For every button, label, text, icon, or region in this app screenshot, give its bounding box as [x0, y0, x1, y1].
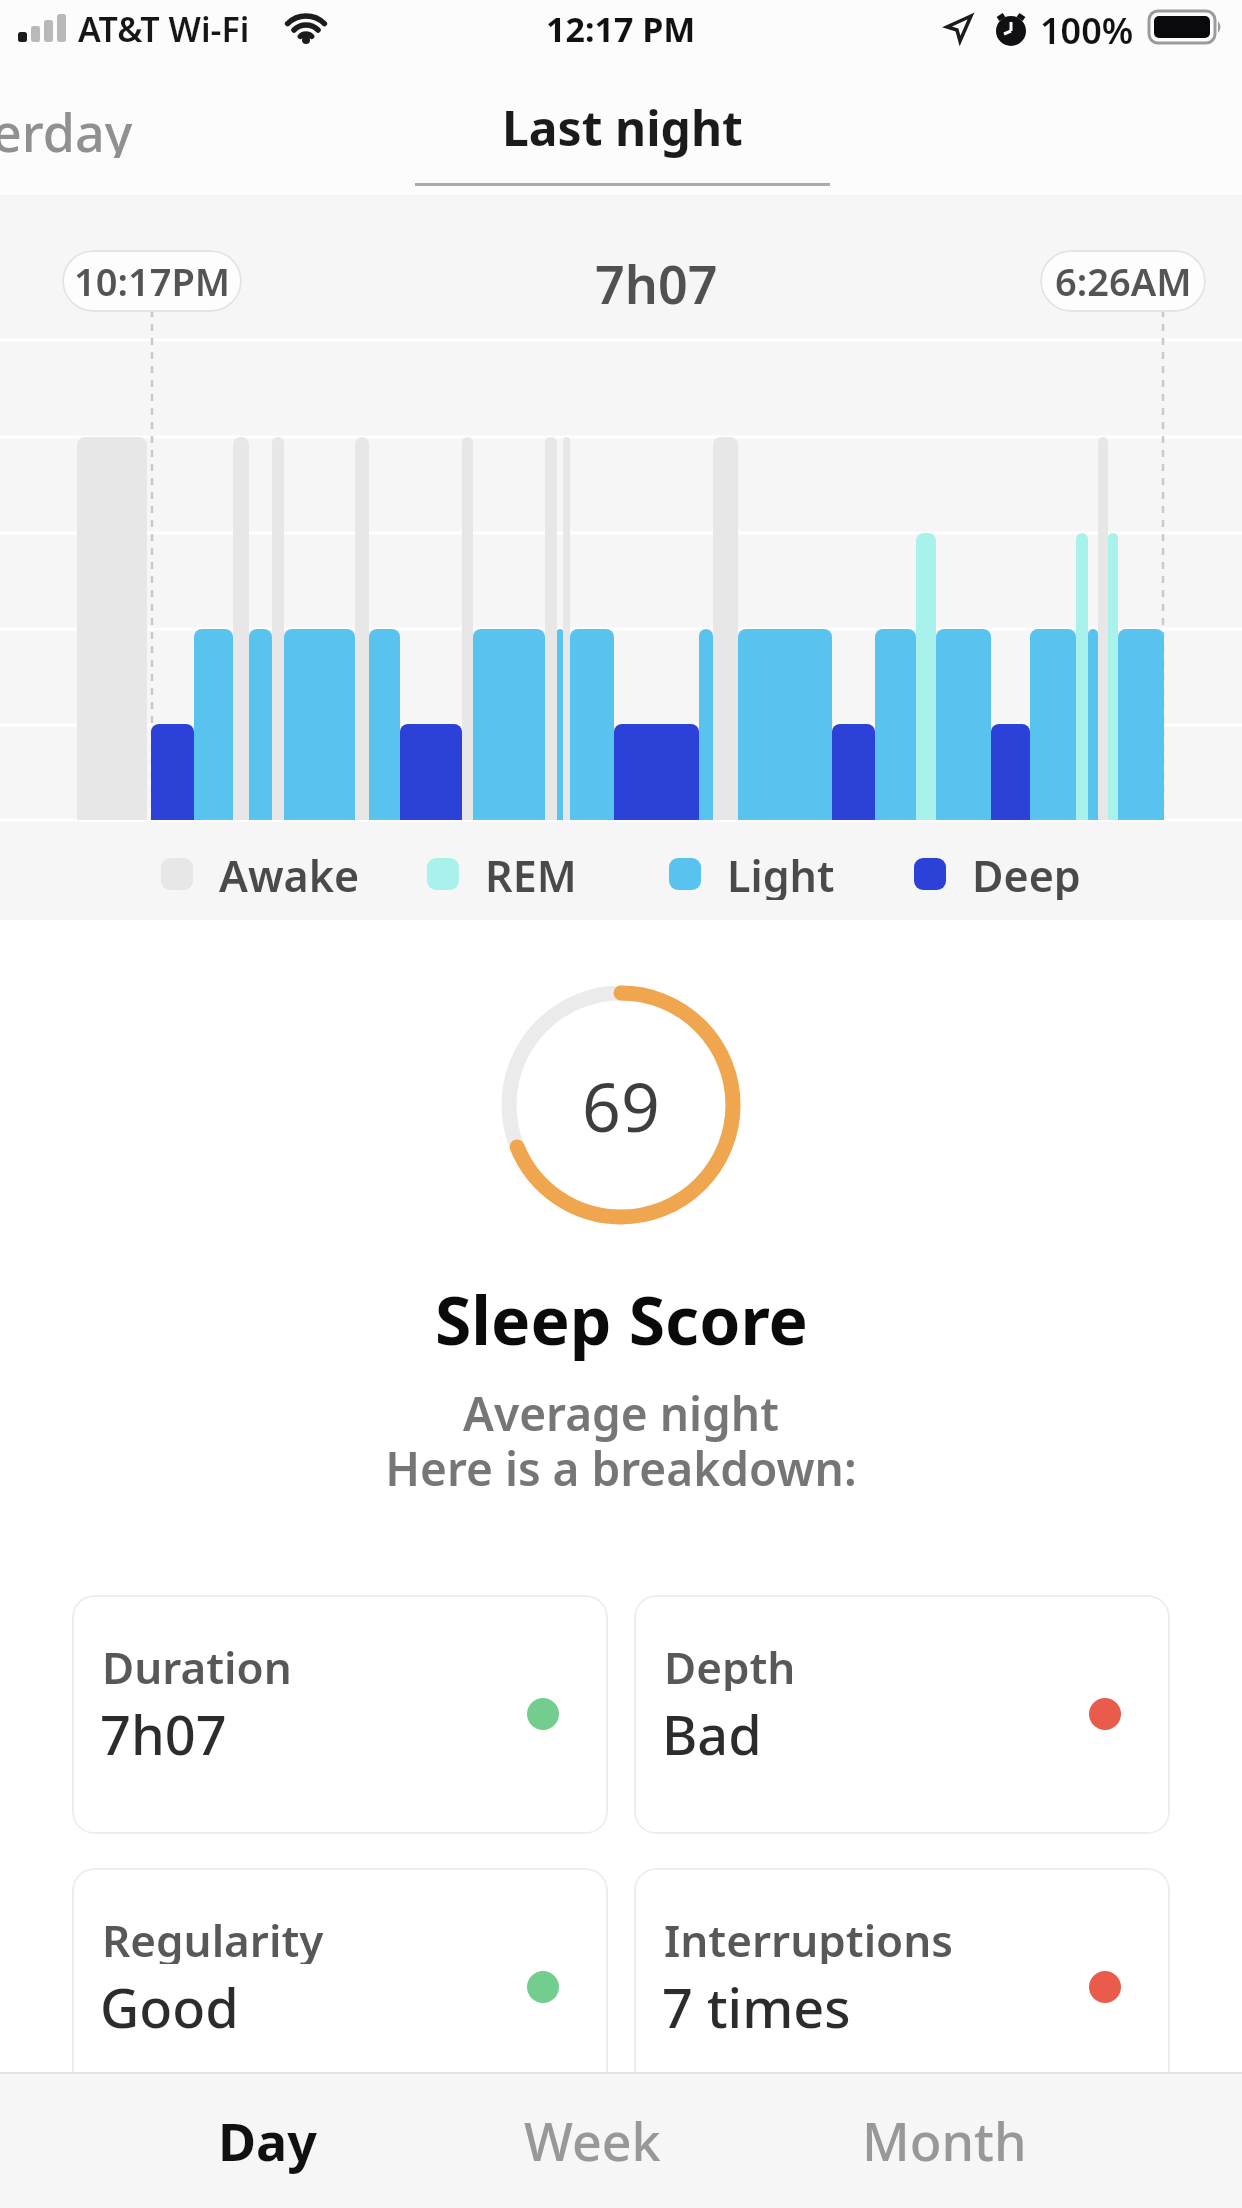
staticText: 7h07	[100, 1697, 227, 1761]
staticText: Interruptions	[664, 1910, 953, 1964]
button[interactable]: Duration	[72, 1595, 608, 1834]
staticText: Day	[218, 2105, 317, 2176]
staticText: Month	[862, 2105, 1027, 2176]
staticText: 69	[582, 1059, 660, 1152]
button[interactable]: Last night	[415, 92, 830, 162]
staticText: Duration	[102, 1637, 292, 1691]
staticText: Deep	[972, 846, 1081, 900]
staticText: 6:26AM	[1055, 255, 1192, 307]
staticText: Depth	[664, 1637, 796, 1691]
staticText: Bad	[662, 1697, 762, 1761]
staticText: Awake	[219, 846, 360, 900]
staticText: REM	[485, 846, 577, 900]
staticText: Last night	[502, 95, 743, 160]
staticText: AT&T Wi-Fi	[78, 6, 250, 50]
staticText: Week	[524, 2105, 661, 2176]
button[interactable]: Depth	[634, 1595, 1170, 1834]
button[interactable]: Day	[167, 2072, 367, 2208]
button[interactable]: Month	[844, 2072, 1044, 2208]
staticText: 7h07	[595, 248, 718, 314]
button[interactable]: Interruptions	[634, 1868, 1170, 2107]
button[interactable]: erday	[0, 96, 172, 158]
button[interactable]: Week	[492, 2072, 692, 2208]
staticText: 100%	[1040, 6, 1134, 50]
staticText: 12:17 PM	[546, 6, 696, 50]
staticText: 10:17PM	[74, 255, 231, 307]
staticText: Light	[727, 846, 835, 900]
staticText: Good	[100, 1970, 239, 2034]
staticText: Regularity	[102, 1910, 324, 1964]
staticText: erday	[0, 96, 133, 158]
staticText: Sleep Score	[435, 1274, 808, 1364]
staticText: 7 times	[662, 1970, 851, 2034]
button[interactable]: Regularity	[72, 1868, 608, 2107]
staticText: Average night Here is a breakdown:	[385, 1382, 857, 1500]
